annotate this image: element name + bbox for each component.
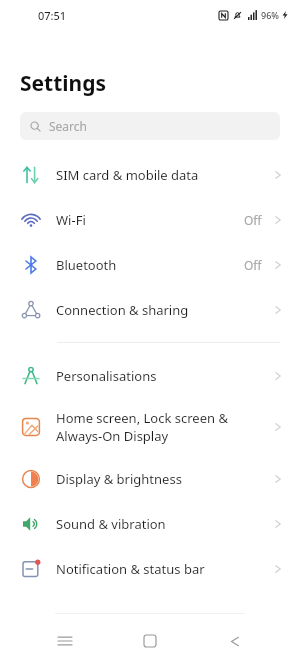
button[interactable]: Personalisations: [0, 353, 300, 398]
button[interactable]: Recents: [45, 621, 85, 661]
button[interactable]: Notification & status bar: [0, 546, 300, 591]
staticText: Off: [244, 212, 262, 228]
button[interactable]: SIM card & mobile data: [0, 152, 300, 197]
button[interactable]: Bluetooth: [0, 242, 300, 287]
staticText: 07:51: [38, 8, 67, 23]
staticText: SIM card & mobile data: [56, 166, 272, 184]
button[interactable]: Home: [130, 621, 170, 661]
staticText: Display & brightness: [56, 470, 272, 488]
staticText: Connection & sharing: [56, 301, 272, 319]
button[interactable]: Connection & sharing: [0, 287, 300, 332]
staticText: Off: [244, 257, 262, 273]
staticText: Personalisations: [56, 367, 272, 385]
button[interactable]: Home screen, Lock screen & Always-On Dis…: [0, 398, 300, 456]
staticText: 96%: [261, 9, 279, 21]
staticText: Wi-Fi: [56, 211, 244, 229]
staticText: Home screen, Lock screen & Always-On Dis…: [56, 409, 272, 445]
button[interactable]: Display & brightness: [0, 456, 300, 501]
staticText: Sound & vibration: [56, 515, 272, 533]
staticText: Search: [49, 118, 87, 134]
button[interactable]: Search: [20, 112, 280, 140]
button[interactable]: Back: [215, 621, 255, 661]
staticText: Bluetooth: [56, 256, 244, 274]
button[interactable]: Wi-Fi: [0, 197, 300, 242]
button[interactable]: Sound & vibration: [0, 501, 300, 546]
staticText: Settings: [20, 69, 107, 98]
staticText: Notification & status bar: [56, 560, 272, 578]
